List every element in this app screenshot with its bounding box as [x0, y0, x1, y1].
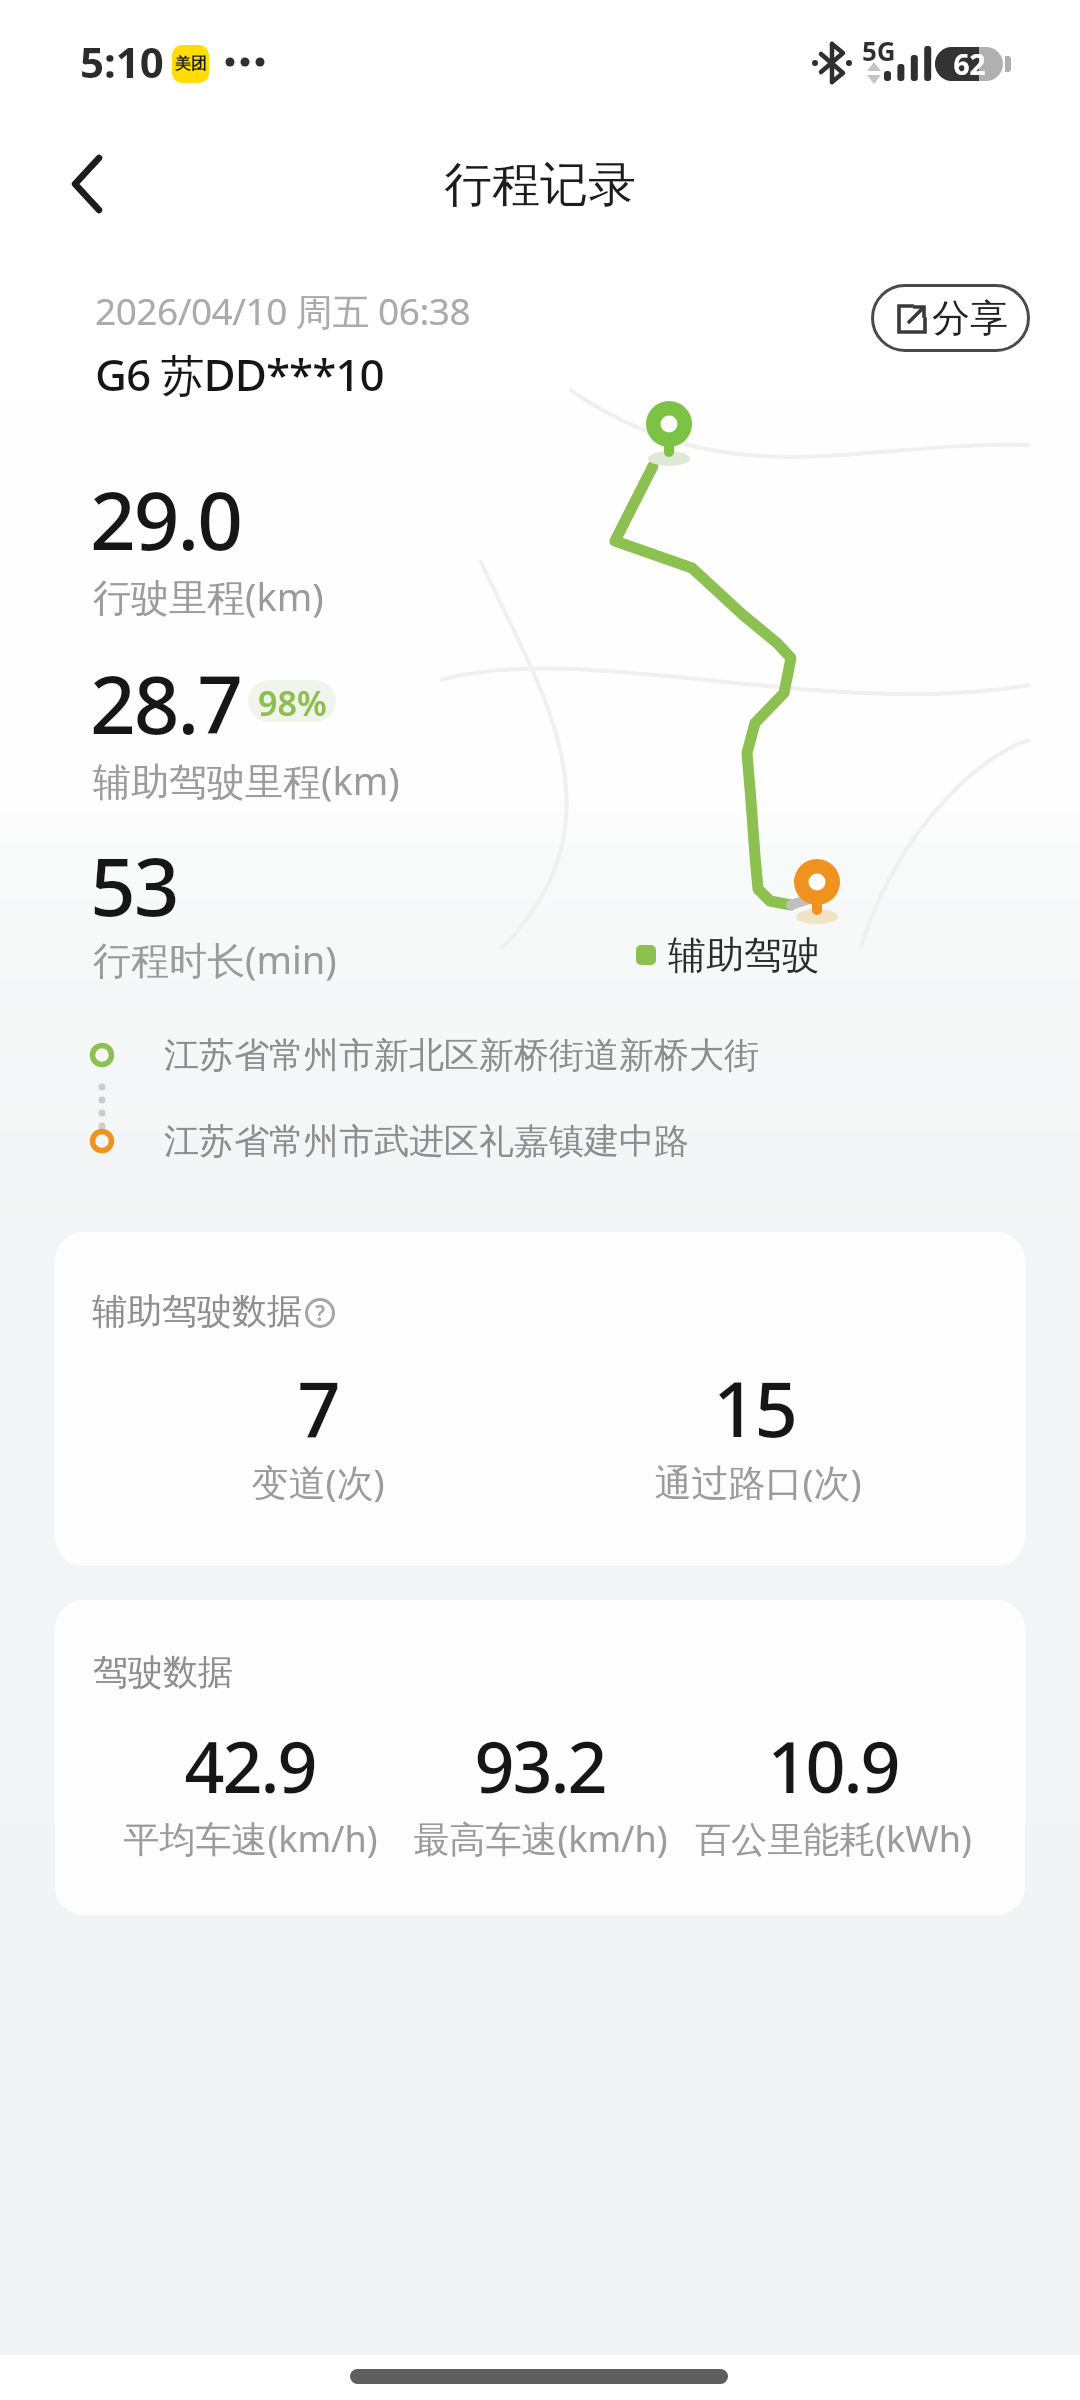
- staticText: 15: [713, 1356, 796, 1460]
- staticText: 62: [953, 45, 986, 83]
- staticText: 分享: [932, 294, 1008, 342]
- staticText: 5:10: [80, 33, 164, 90]
- button[interactable]: 分享: [871, 284, 1030, 352]
- staticText: 通过路口(次): [654, 1456, 862, 1507]
- staticText: 辅助驾驶数据: [92, 1289, 302, 1333]
- staticText: 98%: [258, 680, 327, 722]
- staticText: 江苏省常州市武进区礼嘉镇建中路: [164, 1119, 689, 1163]
- staticText: 辅助驾驶里程(km): [93, 754, 400, 806]
- staticText: 平均车速(km/h): [123, 1814, 378, 1863]
- staticText: 江苏省常州市新北区新桥街道新桥大街: [164, 1033, 759, 1077]
- staticText: 2026/04/10 周五 06:38: [95, 285, 471, 336]
- staticText: 42.9: [184, 1718, 316, 1813]
- staticText: 行驶里程(km): [93, 570, 324, 622]
- staticText: 93.2: [474, 1718, 606, 1813]
- staticText: 28.7: [90, 648, 242, 757]
- staticText: 百公里能耗(kWh): [695, 1814, 972, 1863]
- staticText: 5G: [862, 33, 896, 68]
- staticText: 美团: [175, 54, 207, 74]
- staticText: ?: [315, 1299, 325, 1328]
- staticText: 最高车速(km/h): [413, 1814, 668, 1863]
- button[interactable]: [55, 1600, 1025, 1915]
- button[interactable]: [70, 155, 106, 213]
- staticText: 变道(次): [251, 1456, 385, 1507]
- staticText: 7: [297, 1356, 339, 1460]
- staticText: 10.9: [767, 1718, 899, 1813]
- staticText: 行程记录: [444, 155, 636, 215]
- staticText: 驾驶数据: [93, 1650, 233, 1694]
- staticText: G6 苏DD***10: [95, 344, 384, 404]
- staticText: 53: [90, 830, 178, 939]
- staticText: 行程时长(min): [93, 933, 337, 985]
- staticText: 辅助驾驶: [668, 931, 820, 979]
- staticText: 29.0: [90, 464, 242, 573]
- button[interactable]: [55, 1232, 1025, 1566]
